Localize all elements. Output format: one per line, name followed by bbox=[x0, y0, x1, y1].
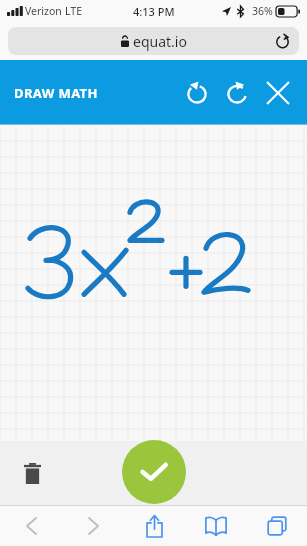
button[interactable]: Bookmarks bbox=[185, 506, 246, 546]
staticText: DRAW MATH bbox=[14, 84, 98, 102]
staticText: Verizon bbox=[25, 4, 62, 18]
button[interactable]: Redo bbox=[217, 73, 257, 113]
button[interactable]: Undo bbox=[177, 73, 217, 113]
button[interactable]: equat.io bbox=[8, 27, 299, 55]
button[interactable]: Back bbox=[0, 506, 62, 546]
button[interactable]: Delete bbox=[12, 453, 52, 493]
button[interactable]: Reload bbox=[269, 28, 295, 54]
button[interactable]: Forward bbox=[62, 506, 124, 546]
button[interactable]: Tabs bbox=[246, 506, 307, 546]
staticText: 4:13 PM bbox=[133, 4, 175, 19]
staticText: equat.io bbox=[133, 32, 187, 51]
button[interactable]: Share bbox=[124, 506, 185, 546]
button[interactable]: Close bbox=[257, 72, 299, 114]
staticText: 36% bbox=[252, 4, 273, 18]
button[interactable]: Accept bbox=[122, 440, 186, 504]
staticText: LTE bbox=[65, 4, 82, 18]
